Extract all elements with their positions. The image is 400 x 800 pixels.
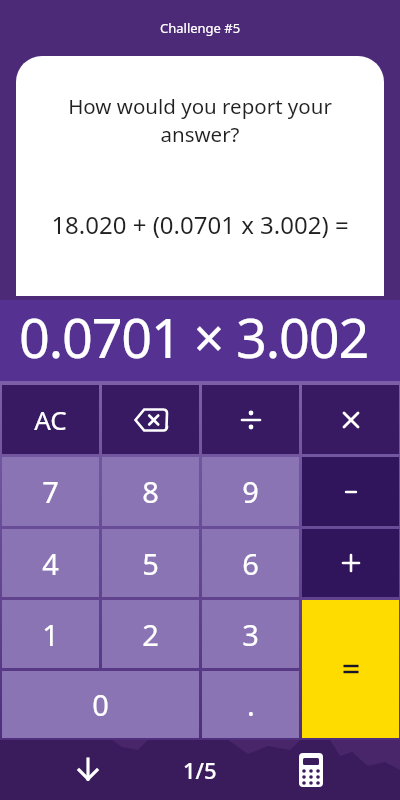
staticText: 18.020 + (0.0701 x 3.002) = <box>51 208 349 241</box>
button[interactable]: 2 <box>102 600 199 668</box>
button[interactable] <box>202 385 299 454</box>
button[interactable]: AC <box>2 385 99 454</box>
staticText: 0 <box>92 685 109 724</box>
button[interactable]: 1 <box>2 600 99 668</box>
staticText: 7 <box>42 472 59 511</box>
button[interactable]: 9 <box>202 457 299 526</box>
staticText: 5 <box>142 544 159 583</box>
button[interactable]: 1/5 <box>156 740 244 800</box>
staticText: 8 <box>142 472 159 511</box>
button[interactable] <box>44 740 132 800</box>
button[interactable]: 8 <box>102 457 199 526</box>
button[interactable] <box>302 600 399 738</box>
staticText: 2 <box>142 615 159 654</box>
button[interactable] <box>302 457 399 526</box>
staticText: 6 <box>242 544 259 583</box>
button[interactable]: . <box>202 671 299 738</box>
staticText: 0.0701 × 3.002 <box>19 300 369 374</box>
button[interactable] <box>102 385 199 454</box>
button[interactable]: 5 <box>102 529 199 597</box>
button[interactable]: 7 <box>2 457 99 526</box>
button[interactable] <box>267 740 355 800</box>
staticText: How would you report your answer? <box>68 92 332 148</box>
staticText: 1 <box>42 615 59 654</box>
staticText: 4 <box>42 544 59 583</box>
button[interactable]: 0 <box>2 671 199 738</box>
button[interactable] <box>302 385 399 454</box>
staticText: 3 <box>242 615 259 654</box>
button[interactable]: 3 <box>202 600 299 668</box>
staticText: 9 <box>242 472 259 511</box>
staticText: . <box>247 685 255 724</box>
staticText: AC <box>34 402 67 437</box>
staticText: 1/5 <box>183 755 217 785</box>
button[interactable] <box>302 529 399 597</box>
button[interactable]: 4 <box>2 529 99 597</box>
button[interactable]: 6 <box>202 529 299 597</box>
staticText: Challenge #5 <box>160 19 241 37</box>
